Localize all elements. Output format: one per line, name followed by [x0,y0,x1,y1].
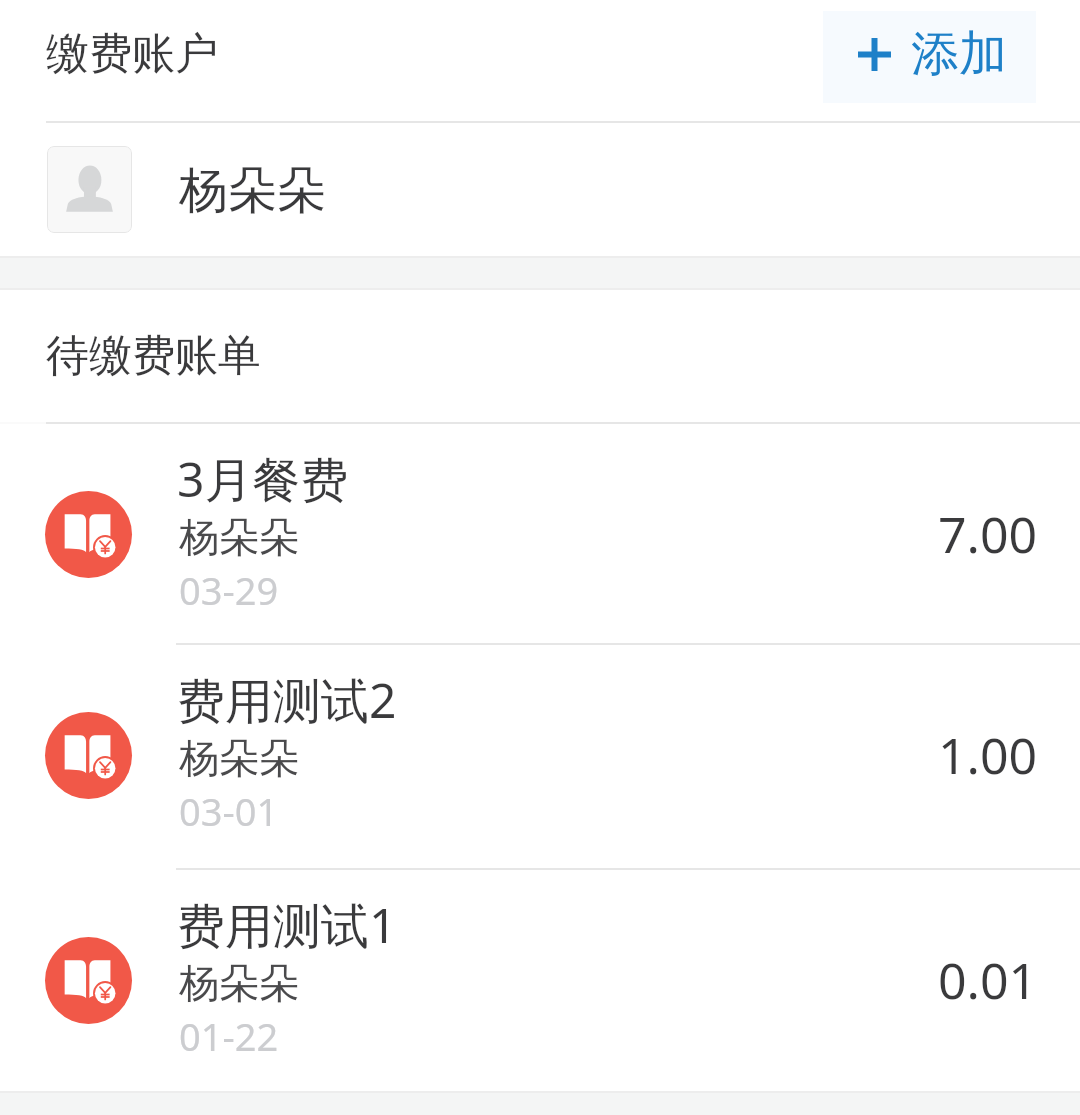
button[interactable]: Bill [0,870,1080,1091]
other: 头像 [47,146,132,233]
other: Bill [45,491,132,578]
button[interactable]: 头像 [0,123,1080,256]
other: Bill [45,937,132,1024]
staticText: 03-29 [179,564,279,616]
button[interactable]: Bill [0,645,1080,868]
other: Bill [45,712,132,799]
staticText: 杨朵朵 [179,733,299,783]
staticText: 缴费账户 [46,27,218,81]
button[interactable]: Bill [0,424,1080,643]
staticText: 3月餐费 [177,446,349,512]
staticText: 03-01 [179,785,279,837]
staticText: 待缴费账单 [46,329,261,383]
staticText: 7.00 [938,500,1038,568]
staticText: 0.01 [938,946,1038,1014]
staticText: 杨朵朵 [179,160,326,222]
staticText: 01-22 [179,1010,279,1062]
staticText: 1.00 [938,721,1038,789]
staticText: 费用测试2 [177,667,397,733]
staticText: 杨朵朵 [179,958,299,1008]
staticText: 杨朵朵 [179,512,299,562]
staticText: 费用测试1 [177,892,397,958]
staticText: 添加 [911,24,1007,84]
button[interactable]: 添加缴费账户 [823,11,1036,103]
